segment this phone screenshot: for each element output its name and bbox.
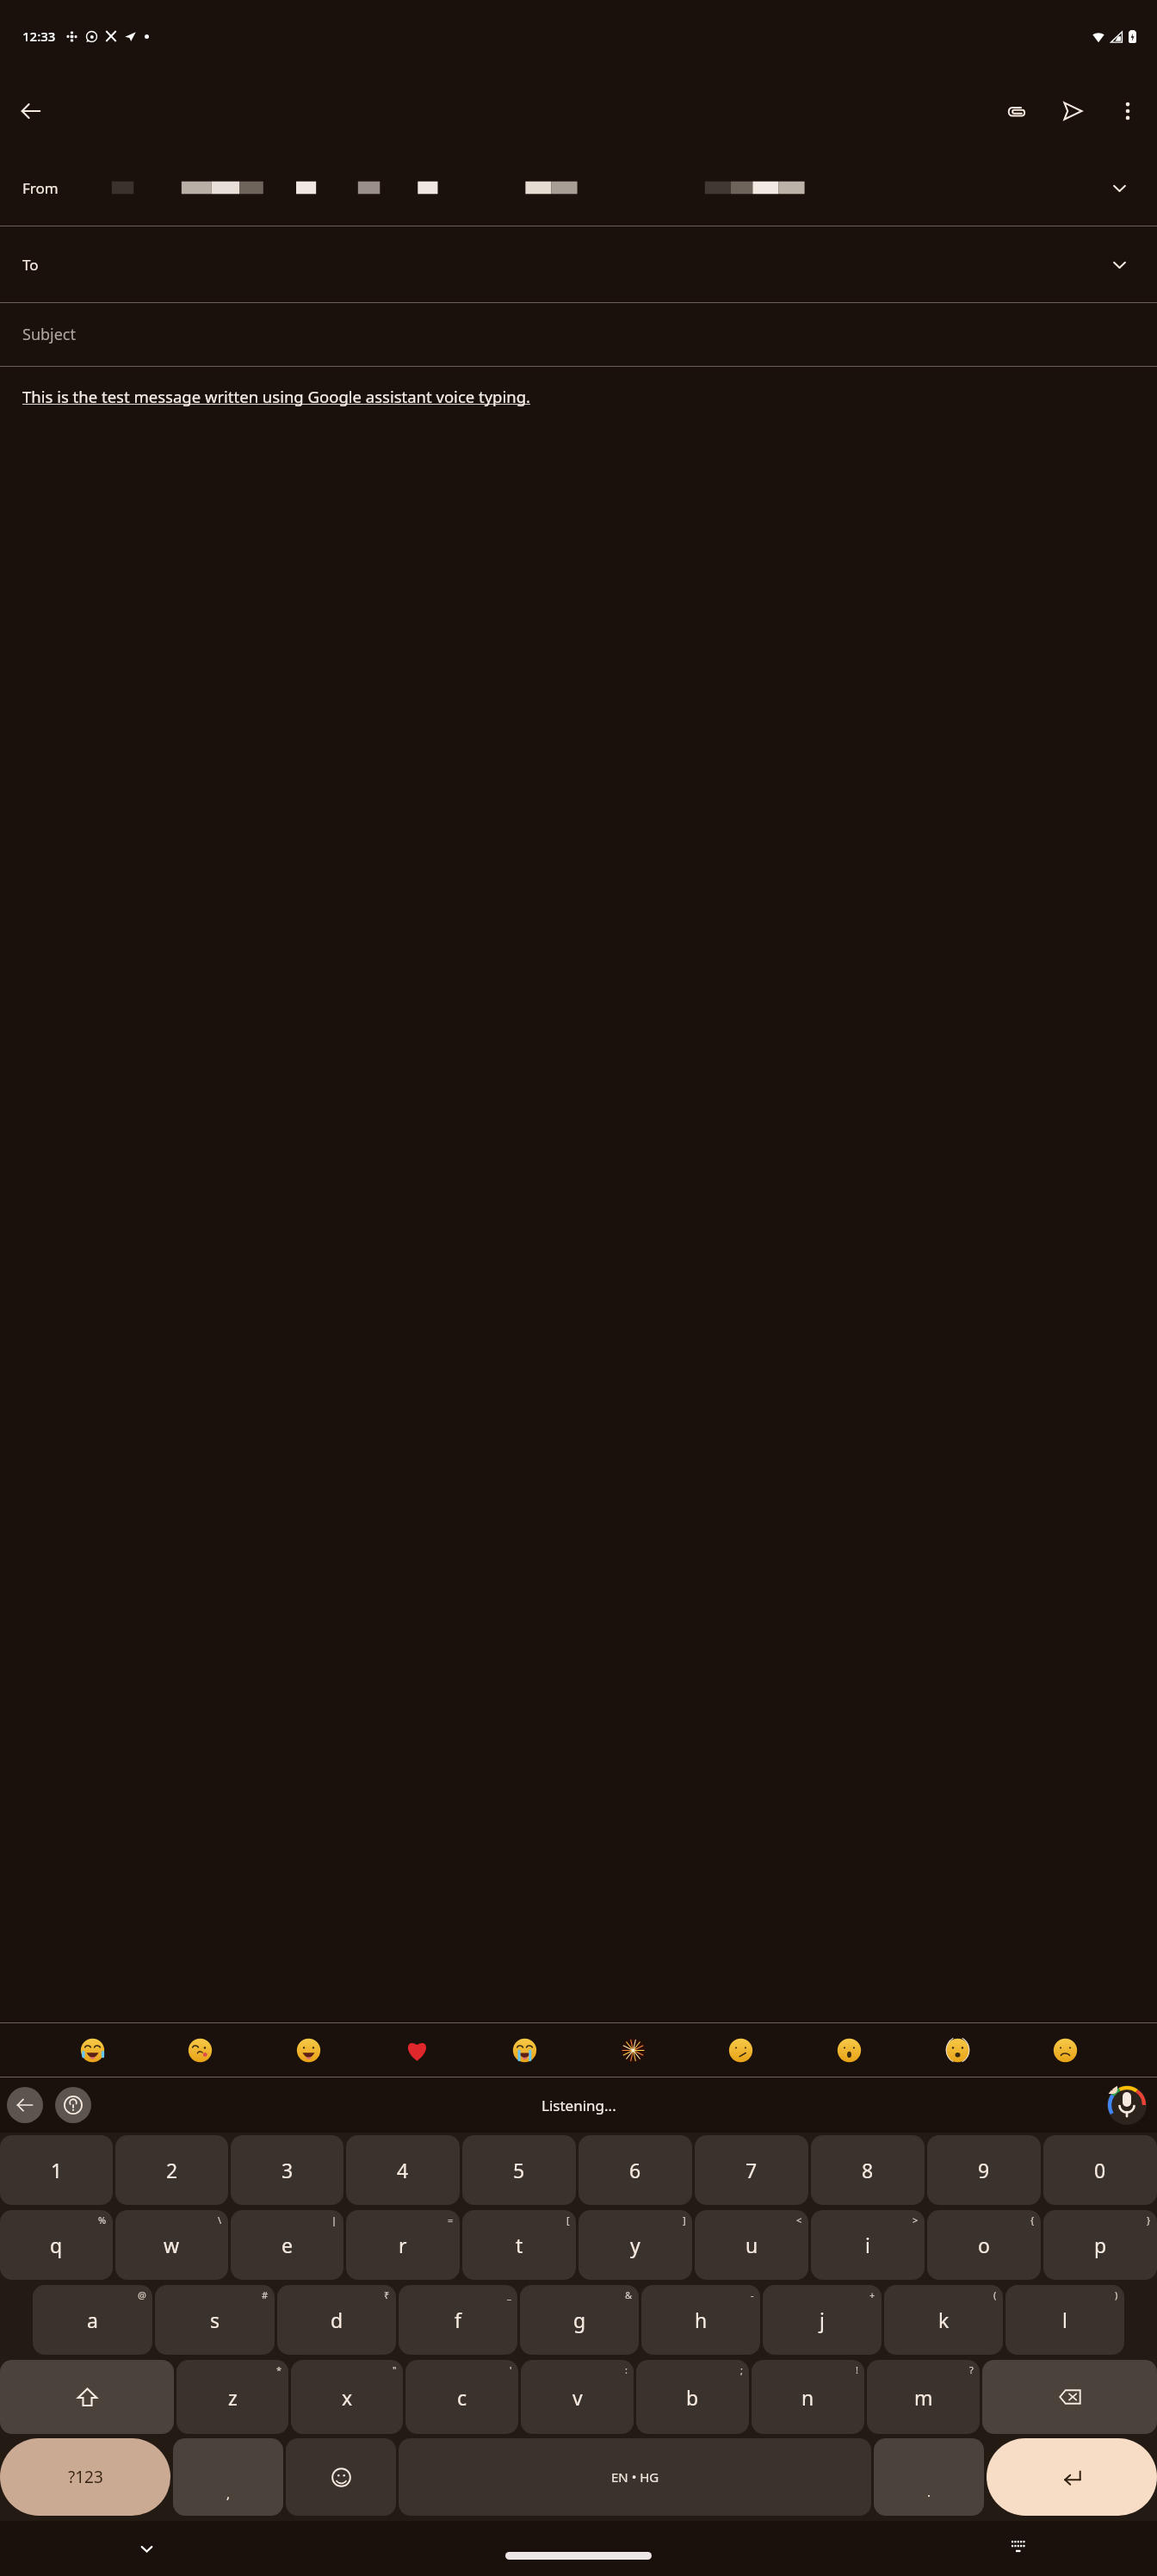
button[interactable]: v xyxy=(521,2360,634,2434)
button[interactable]: Emoji 7 xyxy=(721,2030,760,2070)
button[interactable]: Help xyxy=(55,2087,91,2123)
button[interactable]: 4 xyxy=(346,2135,460,2205)
staticText: s xyxy=(210,2307,220,2333)
staticText: To xyxy=(22,255,39,275)
button[interactable]: t xyxy=(462,2210,576,2280)
staticText: , xyxy=(226,2485,231,2502)
button[interactable]: s xyxy=(155,2285,275,2355)
button[interactable]: m xyxy=(867,2360,980,2434)
staticText: a xyxy=(87,2307,98,2333)
staticText: From xyxy=(22,178,59,198)
button[interactable]: 0 xyxy=(1043,2135,1157,2205)
button[interactable]: k xyxy=(884,2285,1003,2355)
button[interactable]: p xyxy=(1043,2210,1157,2280)
button[interactable]: f xyxy=(399,2285,517,2355)
button[interactable]: Microphone, English xyxy=(1105,2084,1148,2127)
button[interactable]: 7 xyxy=(695,2135,808,2205)
button[interactable]: y xyxy=(578,2210,692,2280)
button[interactable]: To xyxy=(0,226,1157,302)
staticText: 1 xyxy=(51,2157,63,2183)
button[interactable]: b xyxy=(636,2360,749,2434)
staticText: ] xyxy=(683,2214,686,2226)
staticText: * xyxy=(276,2363,282,2376)
button[interactable]: a xyxy=(33,2285,152,2355)
staticText: | xyxy=(331,2214,337,2226)
staticText: 4 xyxy=(397,2157,409,2183)
button[interactable]: e xyxy=(231,2210,343,2280)
button[interactable]: Change keyboard xyxy=(1002,2531,1036,2566)
staticText: e xyxy=(282,2232,293,2258)
button[interactable]: , xyxy=(173,2438,283,2516)
button[interactable]: Subject xyxy=(0,303,1157,366)
button[interactable]: c xyxy=(405,2360,518,2434)
button[interactable]: Enter xyxy=(987,2438,1157,2516)
button[interactable]: Send xyxy=(1049,87,1097,135)
staticText: @ xyxy=(138,2288,146,2301)
button[interactable]: Hide keyboard xyxy=(129,2531,164,2566)
staticText: % xyxy=(98,2214,107,2226)
staticText: 3 xyxy=(282,2157,294,2183)
staticText: ( xyxy=(993,2288,997,2301)
button[interactable]: Attach file xyxy=(992,87,1040,135)
button[interactable]: z xyxy=(176,2360,288,2434)
button[interactable]: Expand to xyxy=(1104,249,1135,280)
button[interactable]: Emoji 9 xyxy=(937,2030,977,2070)
button[interactable]: Back xyxy=(7,2087,43,2123)
staticText: _ xyxy=(507,2288,511,2301)
button[interactable]: 1 xyxy=(0,2135,113,2205)
button[interactable]: j xyxy=(763,2285,882,2355)
staticText: ?123 xyxy=(68,2466,103,2488)
button[interactable]: 9 xyxy=(927,2135,1041,2205)
button[interactable]: Emoji xyxy=(286,2438,396,2516)
button[interactable]: Emoji 2 xyxy=(180,2030,220,2070)
staticText: k xyxy=(938,2307,950,2333)
button[interactable]: . xyxy=(874,2438,984,2516)
button[interactable]: q xyxy=(0,2210,113,2280)
button[interactable]: EN • HG xyxy=(399,2438,871,2516)
staticText: ! xyxy=(856,2363,858,2376)
button[interactable]: Emoji 1 xyxy=(72,2030,112,2070)
button[interactable]: Emoji 4 xyxy=(397,2030,436,2070)
button[interactable]: Back xyxy=(7,87,55,135)
button[interactable]: Emoji 10 xyxy=(1045,2030,1085,2070)
button[interactable]: n xyxy=(752,2360,864,2434)
button[interactable]: Backspace xyxy=(982,2360,1157,2434)
staticText: h xyxy=(695,2307,708,2333)
button[interactable]: Expand from xyxy=(1104,172,1135,203)
button[interactable]: From xyxy=(0,150,1157,226)
button[interactable]: x xyxy=(291,2360,403,2434)
button[interactable]: i xyxy=(811,2210,925,2280)
button[interactable]: 2 xyxy=(115,2135,228,2205)
button[interactable]: Shift xyxy=(0,2360,174,2434)
staticText: This is the test message written using G… xyxy=(22,386,531,407)
button[interactable]: g xyxy=(520,2285,639,2355)
button[interactable]: o xyxy=(927,2210,1041,2280)
staticText: - xyxy=(751,2288,754,2301)
staticText: v xyxy=(572,2384,583,2411)
button[interactable]: 6 xyxy=(578,2135,692,2205)
button[interactable]: Emoji 8 xyxy=(829,2030,869,2070)
button[interactable]: h xyxy=(641,2285,760,2355)
staticText: ₹ xyxy=(384,2288,390,2301)
button[interactable]: r xyxy=(346,2210,460,2280)
staticText: EN • HG xyxy=(611,2468,659,2486)
button[interactable]: This is the test message written using G… xyxy=(0,367,1157,2022)
button[interactable]: More options xyxy=(1104,87,1152,135)
staticText: p xyxy=(1094,2232,1107,2258)
button[interactable]: d xyxy=(277,2285,396,2355)
button[interactable]: 3 xyxy=(231,2135,343,2205)
staticText: 2 xyxy=(166,2157,178,2183)
staticText: & xyxy=(625,2288,633,2301)
button[interactable]: ?123 xyxy=(0,2438,170,2516)
staticText: # xyxy=(262,2288,269,2301)
button[interactable]: 8 xyxy=(811,2135,925,2205)
button[interactable]: w xyxy=(115,2210,228,2280)
button[interactable]: Emoji 6 xyxy=(613,2030,653,2070)
button[interactable]: Emoji 3 xyxy=(288,2030,328,2070)
button[interactable]: l xyxy=(1005,2285,1124,2355)
staticText: q xyxy=(50,2232,63,2258)
button[interactable]: u xyxy=(695,2210,808,2280)
staticText: y xyxy=(630,2232,640,2258)
button[interactable]: Emoji 5 xyxy=(504,2030,544,2070)
button[interactable]: 5 xyxy=(462,2135,576,2205)
